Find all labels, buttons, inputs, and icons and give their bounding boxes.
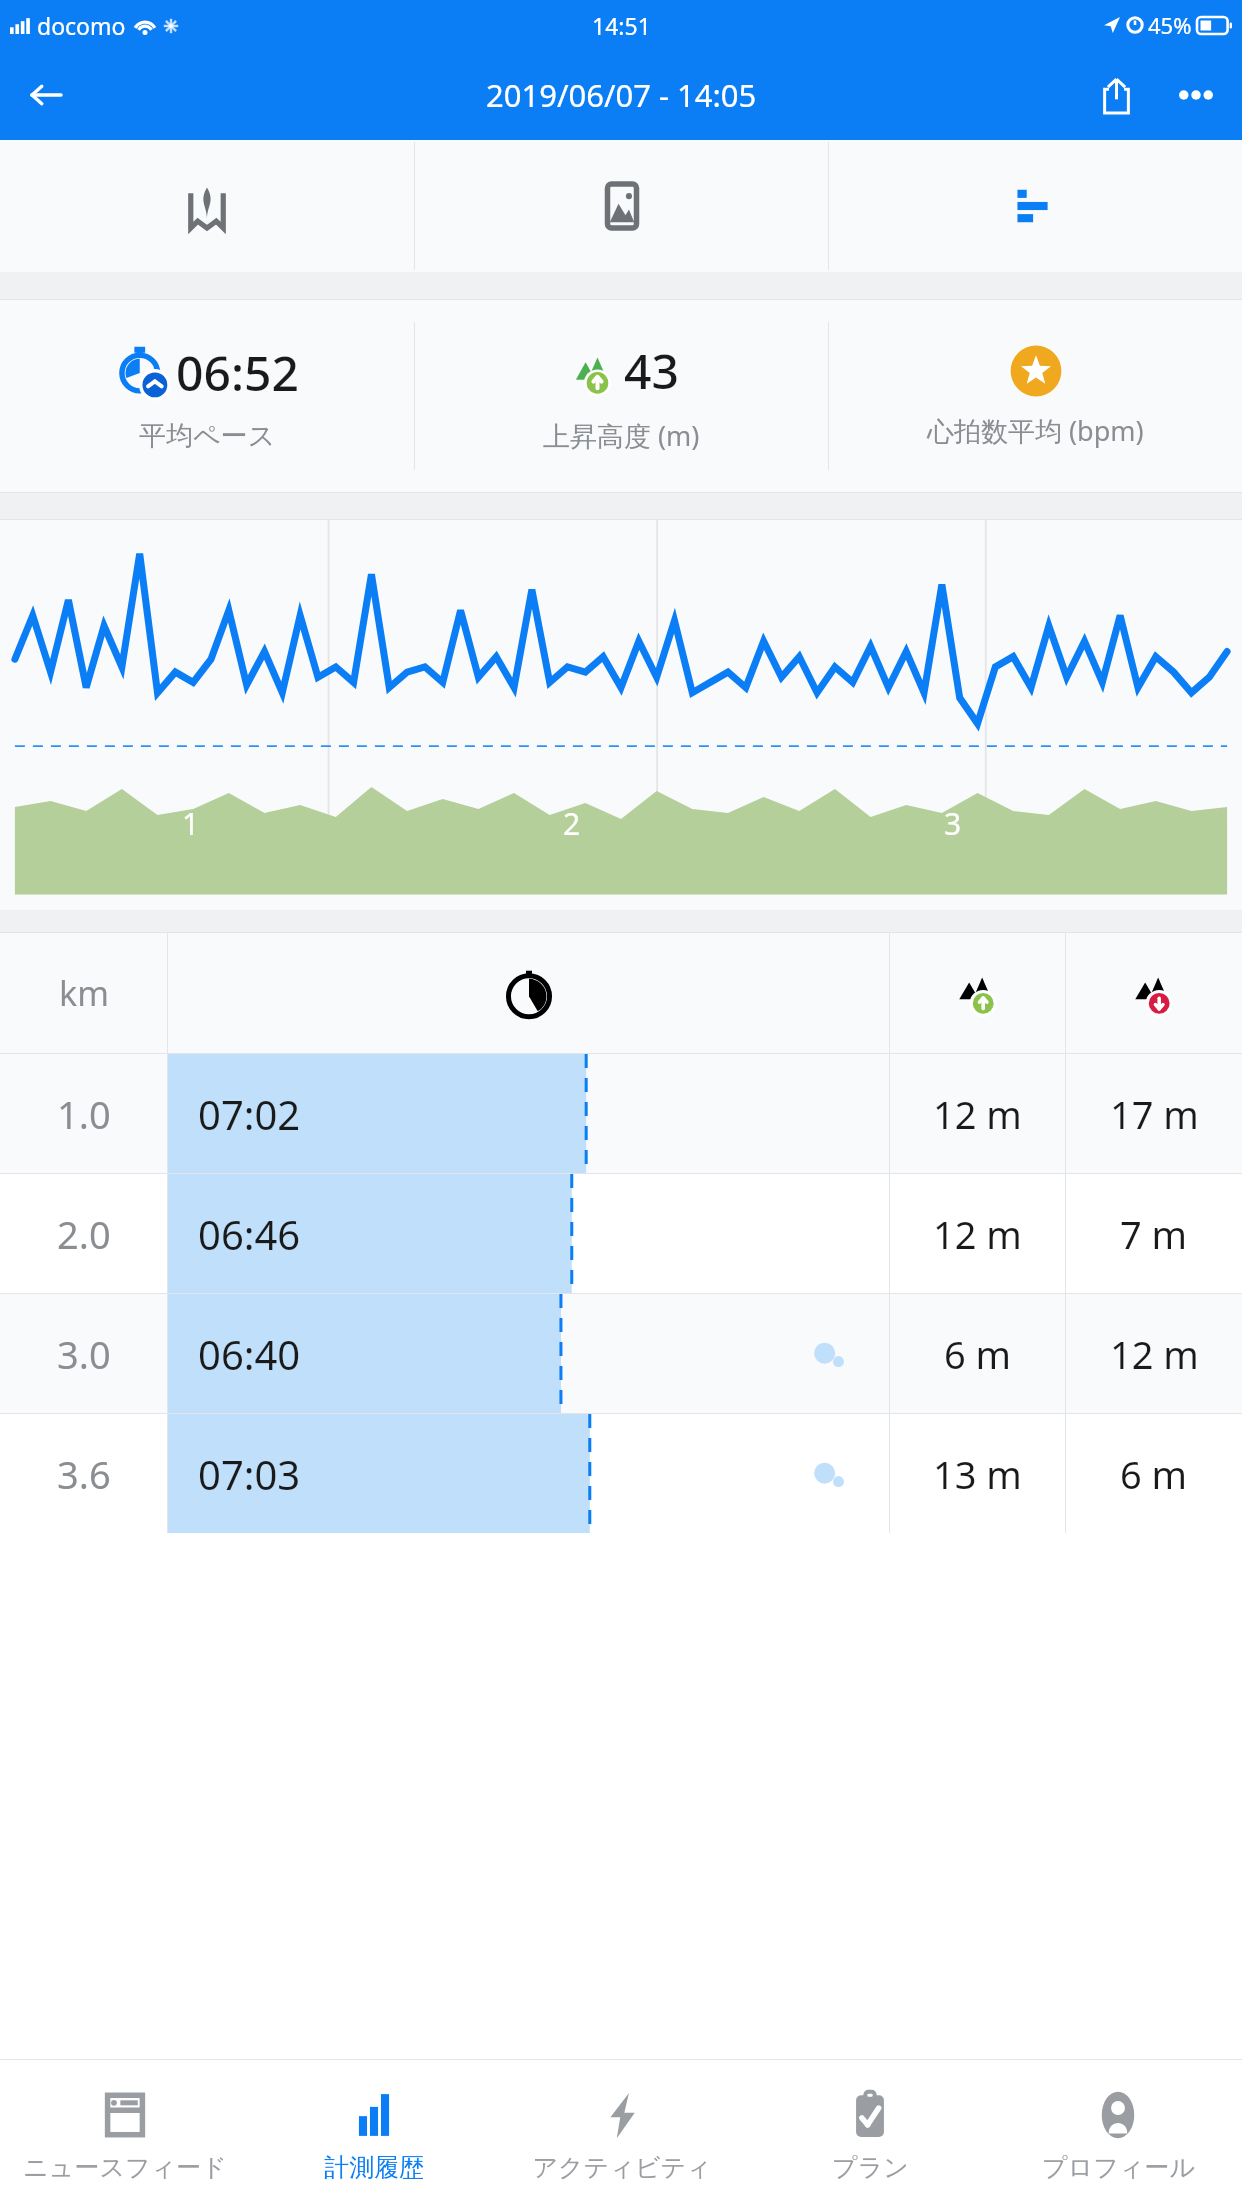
staticText: 1: [182, 803, 200, 844]
button[interactable]: Back: [18, 67, 74, 123]
staticText: 43: [624, 338, 679, 403]
button[interactable]: 06:52: [0, 300, 414, 492]
button[interactable]: Photos tab: [415, 140, 828, 272]
staticText: 07:03: [198, 1447, 301, 1501]
staticText: プラン: [832, 2152, 909, 2183]
button[interactable]: 計測履歴: [249, 2060, 498, 2208]
staticText: 3.0: [57, 1328, 111, 1380]
button[interactable]: プラン: [746, 2060, 994, 2208]
staticText: 計測履歴: [324, 2152, 424, 2183]
staticText: 12 m: [933, 1208, 1022, 1260]
staticText: docomo: [37, 10, 126, 41]
staticText: 2.0: [57, 1208, 111, 1260]
staticText: 14:51: [592, 10, 651, 41]
button[interactable]: Chart tab: [829, 140, 1242, 272]
staticText: 平均ペース: [139, 419, 276, 453]
button[interactable]: 3.0: [0, 1294, 1242, 1413]
staticText: ニュースフィード: [23, 2152, 227, 2183]
button[interactable]: More options: [1164, 63, 1228, 127]
button[interactable]: Map tab: [0, 140, 414, 272]
staticText: 45%: [1148, 10, 1192, 40]
button[interactable]: 2.0: [0, 1174, 1242, 1293]
button[interactable]: 3.6: [0, 1414, 1242, 1533]
button[interactable]: アクティビティ: [498, 2060, 746, 2208]
staticText: 3.6: [57, 1448, 111, 1500]
staticText: 7 m: [1120, 1208, 1188, 1260]
button[interactable]: ニュースフィード: [0, 2060, 249, 2208]
staticText: 12 m: [1110, 1328, 1199, 1380]
staticText: 6 m: [1120, 1448, 1188, 1500]
button[interactable]: 心拍数平均 (bpm): [829, 300, 1242, 492]
staticText: プロフィール: [1042, 2152, 1195, 2183]
button[interactable]: 43: [415, 300, 828, 492]
staticText: アクティビティ: [532, 2152, 712, 2183]
staticText: 6 m: [944, 1328, 1012, 1380]
button[interactable]: 1.0: [0, 1054, 1242, 1173]
staticText: 2: [563, 803, 581, 844]
staticText: 06:46: [198, 1207, 301, 1261]
staticText: km: [59, 970, 109, 1016]
button[interactable]: プロフィール: [994, 2060, 1242, 2208]
staticText: 17 m: [1110, 1088, 1199, 1140]
staticText: 上昇高度 (m): [543, 417, 700, 454]
staticText: 3: [944, 803, 962, 844]
staticText: 12 m: [933, 1088, 1022, 1140]
staticText: 06:52: [176, 340, 299, 405]
staticText: 2019/06/07 - 14:05: [486, 74, 757, 116]
button[interactable]: Share: [1084, 63, 1148, 127]
staticText: 心拍数平均 (bpm): [927, 412, 1144, 449]
staticText: 13 m: [933, 1448, 1022, 1500]
staticText: 07:02: [198, 1087, 301, 1141]
staticText: 1.0: [57, 1088, 111, 1140]
staticText: 06:40: [198, 1327, 301, 1381]
